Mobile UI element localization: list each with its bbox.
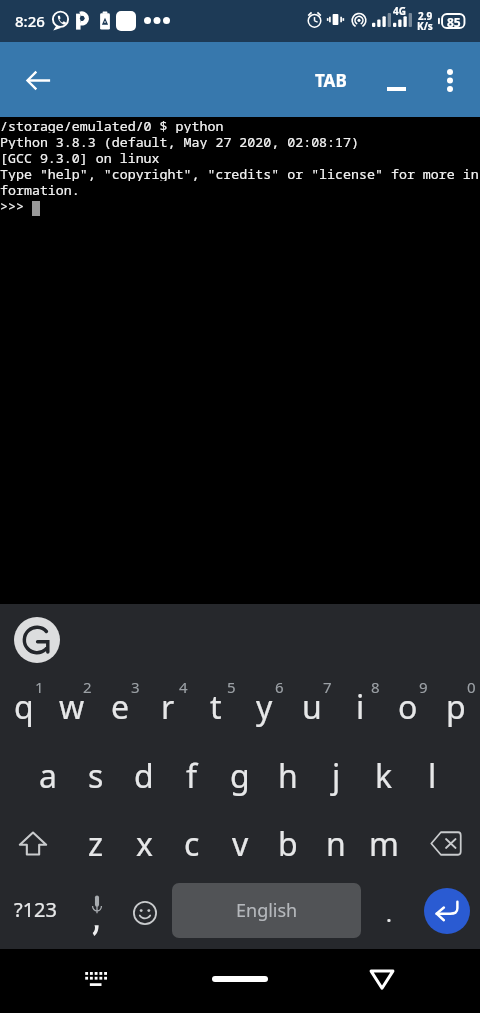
staticText: u — [302, 685, 322, 729]
staticText: 8 — [371, 677, 380, 697]
button[interactable]: a — [24, 742, 72, 810]
staticText: 2.9 — [418, 9, 433, 23]
button[interactable]: Enter — [424, 888, 470, 934]
staticText: Python 3.8.3 (default, May 27 2020, 02:0… — [0, 133, 480, 149]
staticText: j — [332, 754, 341, 798]
staticText: 7 — [323, 677, 332, 697]
button[interactable]: Emoji — [120, 878, 168, 948]
staticText: 4G — [393, 4, 406, 18]
button[interactable]: Backspace — [408, 812, 480, 878]
button[interactable]: Voice input — [72, 878, 120, 948]
button[interactable]: s — [72, 742, 120, 810]
staticText: f — [186, 754, 198, 798]
staticText: ?123 — [14, 896, 57, 923]
button[interactable]: b — [264, 811, 312, 877]
staticText: x — [136, 822, 153, 866]
staticText: . — [386, 898, 392, 928]
staticText: >>> — [0, 197, 480, 213]
button[interactable]: d — [120, 742, 168, 810]
button[interactable]: z — [72, 811, 120, 877]
button[interactable]: Google search — [14, 617, 60, 663]
button[interactable]: e — [96, 672, 144, 740]
button[interactable]: g — [216, 742, 264, 810]
staticText: 3 — [131, 677, 140, 697]
staticText: p — [446, 685, 466, 729]
button[interactable]: u — [288, 672, 336, 740]
staticText: y — [256, 685, 273, 729]
button[interactable]: n — [312, 811, 360, 877]
staticText: 0 — [467, 677, 476, 697]
staticText: b — [278, 822, 298, 866]
staticText: g — [230, 754, 250, 798]
staticText: K/s — [417, 19, 433, 33]
staticText: z — [88, 822, 104, 866]
staticText: 1 — [35, 677, 44, 697]
staticText: 5 — [227, 677, 236, 697]
staticText: m — [369, 822, 399, 866]
button[interactable]: Shift — [0, 812, 72, 878]
staticText: 4 — [179, 677, 188, 697]
button[interactable]: x — [120, 811, 168, 877]
button[interactable]: q — [0, 672, 48, 740]
staticText: c — [184, 822, 200, 866]
staticText: i — [356, 685, 365, 729]
staticText: 8:26 — [15, 11, 45, 31]
staticText: e — [111, 685, 130, 729]
staticText: 85 — [447, 14, 461, 30]
staticText: v — [232, 822, 249, 866]
button[interactable]: Home — [208, 949, 272, 1013]
staticText: w — [59, 685, 85, 729]
staticText: TAB — [315, 69, 347, 92]
staticText: Type "help", "copyright", "credits" or "… — [0, 165, 480, 181]
staticText: q — [14, 685, 34, 729]
button[interactable]: . — [364, 878, 412, 948]
staticText: k — [375, 754, 393, 798]
button[interactable]: i — [336, 672, 384, 740]
button[interactable]: l — [408, 742, 456, 810]
button[interactable]: Minimize — [372, 56, 420, 104]
button[interactable]: t — [192, 672, 240, 740]
button[interactable]: y — [240, 672, 288, 740]
staticText: 9 — [419, 677, 428, 697]
staticText: o — [398, 685, 418, 729]
staticText: l — [428, 754, 437, 798]
staticText: a — [39, 754, 57, 798]
button[interactable]: More options — [426, 56, 474, 104]
staticText: t — [210, 685, 222, 729]
staticText: 6 — [275, 677, 284, 697]
staticText: h — [278, 754, 298, 798]
button[interactable]: c — [168, 811, 216, 877]
button[interactable]: o — [384, 672, 432, 740]
staticText: d — [134, 754, 154, 798]
button[interactable]: p — [432, 672, 480, 740]
button[interactable]: m — [360, 811, 408, 877]
staticText: r — [161, 685, 175, 729]
staticText: n — [326, 822, 346, 866]
staticText: /storage/emulated/0 $ python — [0, 117, 480, 133]
button[interactable]: Hide keyboard — [350, 949, 414, 1013]
button[interactable]: f — [168, 742, 216, 810]
button[interactable]: r — [144, 672, 192, 740]
button[interactable]: Back — [14, 56, 62, 104]
staticText: English — [236, 898, 298, 923]
button[interactable]: k — [360, 742, 408, 810]
button[interactable]: Switch keyboard — [64, 949, 128, 1013]
button[interactable]: English — [172, 883, 361, 938]
button[interactable]: h — [264, 742, 312, 810]
button[interactable]: w — [48, 672, 96, 740]
button[interactable]: j — [312, 742, 360, 810]
staticText: [GCC 9.3.0] on linux — [0, 149, 480, 165]
button[interactable]: TAB — [300, 56, 362, 104]
staticText: formation. — [0, 181, 480, 197]
button[interactable]: ?123 — [0, 878, 72, 948]
staticText: s — [88, 754, 104, 798]
staticText: 2 — [83, 677, 92, 697]
button[interactable]: v — [216, 811, 264, 877]
